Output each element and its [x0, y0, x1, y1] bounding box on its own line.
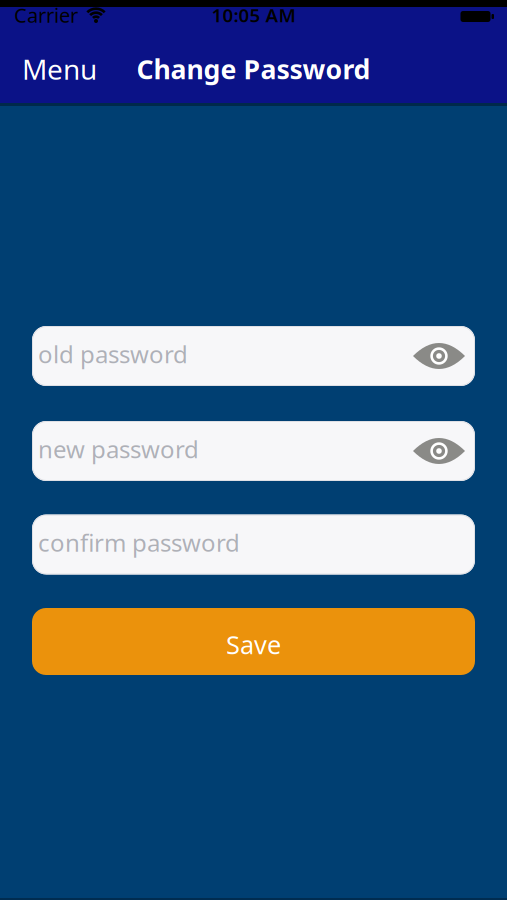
staticText: Change Password [136, 51, 370, 87]
button[interactable]: Show password [413, 342, 465, 370]
button[interactable]: Save [32, 608, 475, 675]
button[interactable]: Menu [22, 50, 97, 88]
staticText: old password [38, 338, 188, 370]
staticText: Carrier [14, 2, 78, 28]
staticText: Save [226, 628, 281, 661]
button[interactable]: Show password [413, 437, 465, 465]
staticText: 10:05 AM [211, 3, 295, 27]
staticText: confirm password [38, 527, 240, 558]
staticText: new password [38, 433, 199, 465]
staticText: Menu [22, 50, 97, 88]
